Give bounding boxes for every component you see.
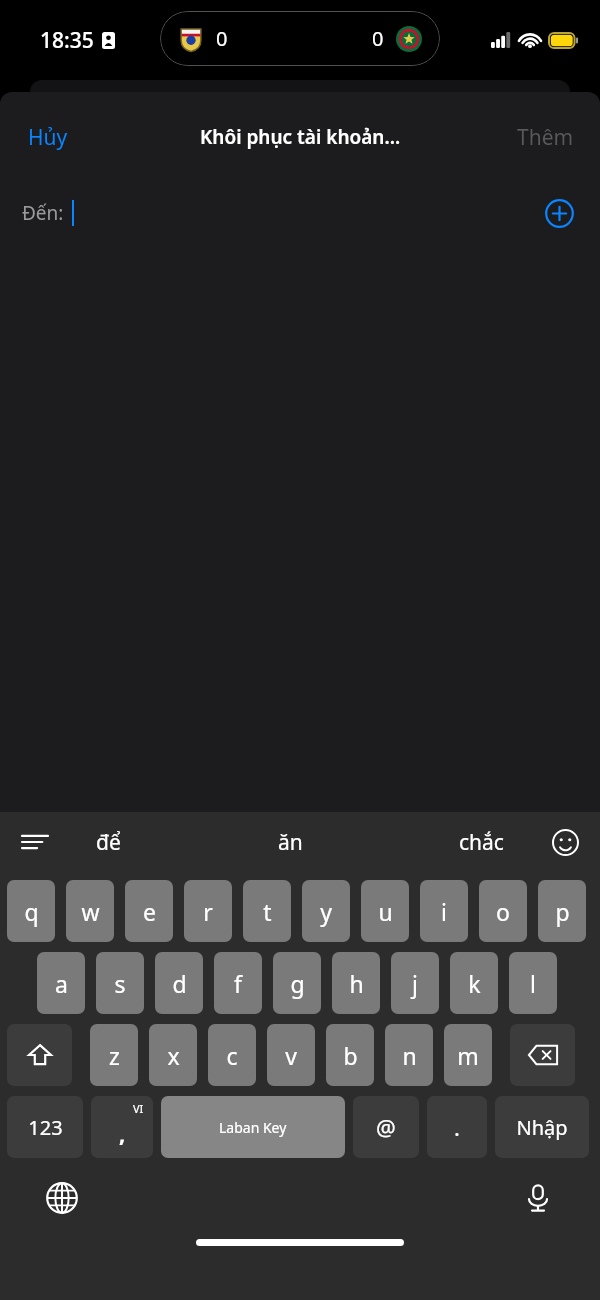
button[interactable]: i bbox=[420, 880, 468, 942]
staticText: ăn bbox=[278, 828, 303, 857]
staticText: t bbox=[263, 896, 272, 927]
button[interactable]: VI bbox=[91, 1096, 153, 1158]
button[interactable]: y bbox=[302, 880, 350, 942]
button[interactable]: b bbox=[326, 1024, 374, 1086]
button[interactable]: Backspace bbox=[510, 1024, 575, 1086]
staticText: l bbox=[530, 968, 536, 999]
button[interactable]: Thêm bbox=[507, 115, 584, 160]
button[interactable]: 123 bbox=[7, 1096, 83, 1158]
staticText: VI bbox=[133, 1101, 144, 1116]
staticText: Thêm bbox=[517, 123, 574, 152]
button[interactable]: v bbox=[267, 1024, 315, 1086]
staticText: a bbox=[55, 968, 68, 999]
staticText: Laban Key bbox=[219, 1118, 287, 1137]
staticText: j bbox=[412, 968, 418, 999]
button[interactable]: d bbox=[155, 952, 203, 1014]
staticText: Đến: bbox=[22, 200, 64, 226]
staticText: x bbox=[167, 1040, 180, 1071]
staticText: b bbox=[343, 1040, 358, 1071]
button[interactable]: m bbox=[444, 1024, 492, 1086]
staticText: v bbox=[285, 1040, 297, 1071]
button[interactable]: z bbox=[90, 1024, 138, 1086]
button[interactable]: j bbox=[391, 952, 439, 1014]
staticText: @ bbox=[376, 1112, 396, 1142]
staticText: s bbox=[114, 968, 126, 999]
staticText: f bbox=[234, 968, 242, 999]
staticText: 123 bbox=[28, 1114, 63, 1141]
button[interactable]: chắc bbox=[443, 822, 520, 863]
staticText: 0 bbox=[216, 25, 228, 52]
staticText: z bbox=[109, 1040, 120, 1071]
staticText: r bbox=[203, 896, 213, 927]
button[interactable]: Nhập bbox=[495, 1096, 589, 1158]
staticText: d bbox=[172, 968, 187, 999]
button[interactable]: f bbox=[214, 952, 262, 1014]
staticText: 18:35 bbox=[40, 26, 94, 55]
staticText: e bbox=[143, 896, 156, 927]
button[interactable]: Add contact bbox=[542, 196, 576, 230]
button[interactable]: @ bbox=[353, 1096, 419, 1158]
staticText: w bbox=[81, 896, 100, 927]
staticText: p bbox=[555, 896, 570, 927]
staticText: o bbox=[496, 896, 510, 927]
staticText: Nhập bbox=[516, 1114, 568, 1141]
button[interactable]: t bbox=[243, 880, 291, 942]
button[interactable]: q bbox=[7, 880, 55, 942]
staticText: i bbox=[441, 896, 447, 927]
button[interactable]: w bbox=[66, 880, 114, 942]
staticText: k bbox=[468, 968, 481, 999]
button[interactable]: s bbox=[96, 952, 144, 1014]
button[interactable]: a bbox=[37, 952, 85, 1014]
staticText: 0 bbox=[372, 25, 384, 52]
button[interactable]: Voice input bbox=[516, 1176, 560, 1220]
staticText: chắc bbox=[459, 828, 504, 857]
staticText: h bbox=[349, 968, 364, 999]
staticText: g bbox=[290, 968, 305, 999]
staticText: để bbox=[96, 828, 121, 857]
staticText: m bbox=[457, 1040, 479, 1071]
button[interactable]: Laban Key bbox=[161, 1096, 345, 1158]
button[interactable]: . bbox=[427, 1096, 487, 1158]
button[interactable]: Change keyboard language bbox=[40, 1176, 84, 1220]
button[interactable]: Keyboard menu bbox=[14, 821, 56, 863]
button[interactable]: n bbox=[385, 1024, 433, 1086]
staticText: , bbox=[119, 1118, 126, 1148]
staticText: . bbox=[454, 1112, 460, 1142]
button[interactable]: Hủy bbox=[16, 115, 80, 160]
button[interactable]: g bbox=[273, 952, 321, 1014]
staticText: Khôi phục tài khoản... bbox=[200, 124, 401, 150]
button[interactable]: Shift bbox=[7, 1024, 72, 1086]
button[interactable]: h bbox=[332, 952, 380, 1014]
staticText: n bbox=[402, 1040, 417, 1071]
button[interactable]: c bbox=[208, 1024, 256, 1086]
button[interactable]: để bbox=[80, 822, 137, 863]
button[interactable]: ăn bbox=[262, 822, 319, 863]
button[interactable]: Emoji bbox=[544, 821, 586, 863]
button[interactable]: u bbox=[361, 880, 409, 942]
button[interactable]: k bbox=[450, 952, 498, 1014]
staticText: q bbox=[24, 896, 39, 927]
button[interactable]: x bbox=[149, 1024, 197, 1086]
staticText: u bbox=[378, 896, 393, 927]
button[interactable]: l bbox=[509, 952, 557, 1014]
staticText: c bbox=[226, 1040, 238, 1071]
staticText: y bbox=[320, 896, 332, 927]
button[interactable]: r bbox=[184, 880, 232, 942]
button[interactable]: o bbox=[479, 880, 527, 942]
staticText: Hủy bbox=[28, 123, 68, 152]
button[interactable]: p bbox=[538, 880, 586, 942]
button[interactable]: e bbox=[125, 880, 173, 942]
